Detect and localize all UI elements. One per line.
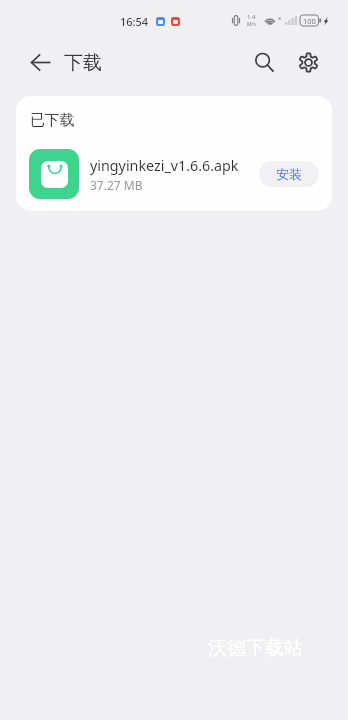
staticText: yingyinkezi_v1.6.6.apk xyxy=(90,156,239,175)
button[interactable]: yingyinkezi_v1.6.6.apk xyxy=(16,138,332,211)
button[interactable]: 下载 xyxy=(64,51,102,75)
button[interactable]: Back xyxy=(22,44,58,80)
staticText: 100 xyxy=(303,16,316,26)
button[interactable]: Search xyxy=(246,44,282,80)
button[interactable]: 安装 xyxy=(259,161,319,187)
staticText: 1.4 xyxy=(247,13,256,21)
staticText: 已下载 xyxy=(30,111,75,130)
staticText: 安装 xyxy=(276,166,302,182)
button[interactable]: Settings xyxy=(290,44,326,80)
staticText: 沃德下载站 xyxy=(208,636,303,660)
staticText: 16:54 xyxy=(120,14,149,29)
staticText: 下载 xyxy=(64,51,102,75)
staticText: x xyxy=(278,14,282,22)
staticText: 37.27 MB xyxy=(90,177,143,193)
staticText: M/s xyxy=(247,21,256,28)
